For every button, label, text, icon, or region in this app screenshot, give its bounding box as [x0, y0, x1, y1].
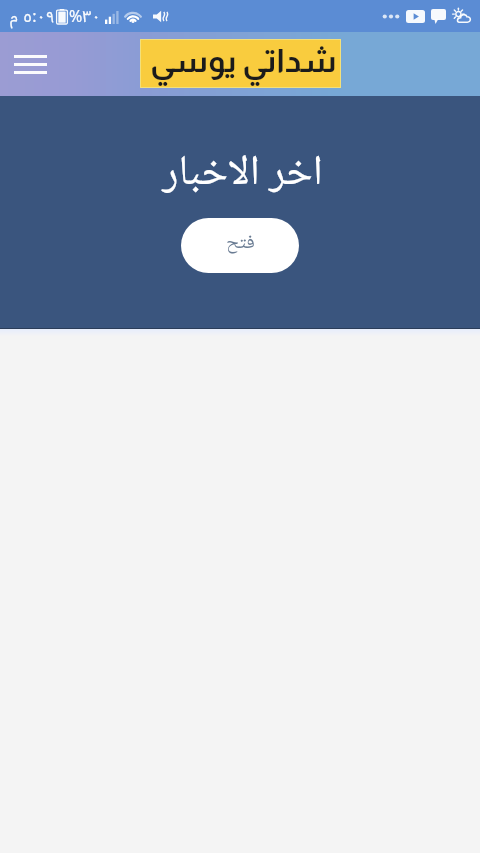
staticText: ٥:٠٩: [23, 0, 55, 32]
staticText: م: [10, 0, 18, 32]
staticText: %٣٠: [69, 0, 101, 32]
button[interactable]: فتح: [181, 218, 299, 273]
staticText: اخر الاخبار: [162, 139, 323, 211]
staticText: فتح: [226, 227, 255, 261]
staticText: شداتي يوسي: [150, 43, 337, 79]
button[interactable]: Open navigation menu: [9, 43, 51, 85]
